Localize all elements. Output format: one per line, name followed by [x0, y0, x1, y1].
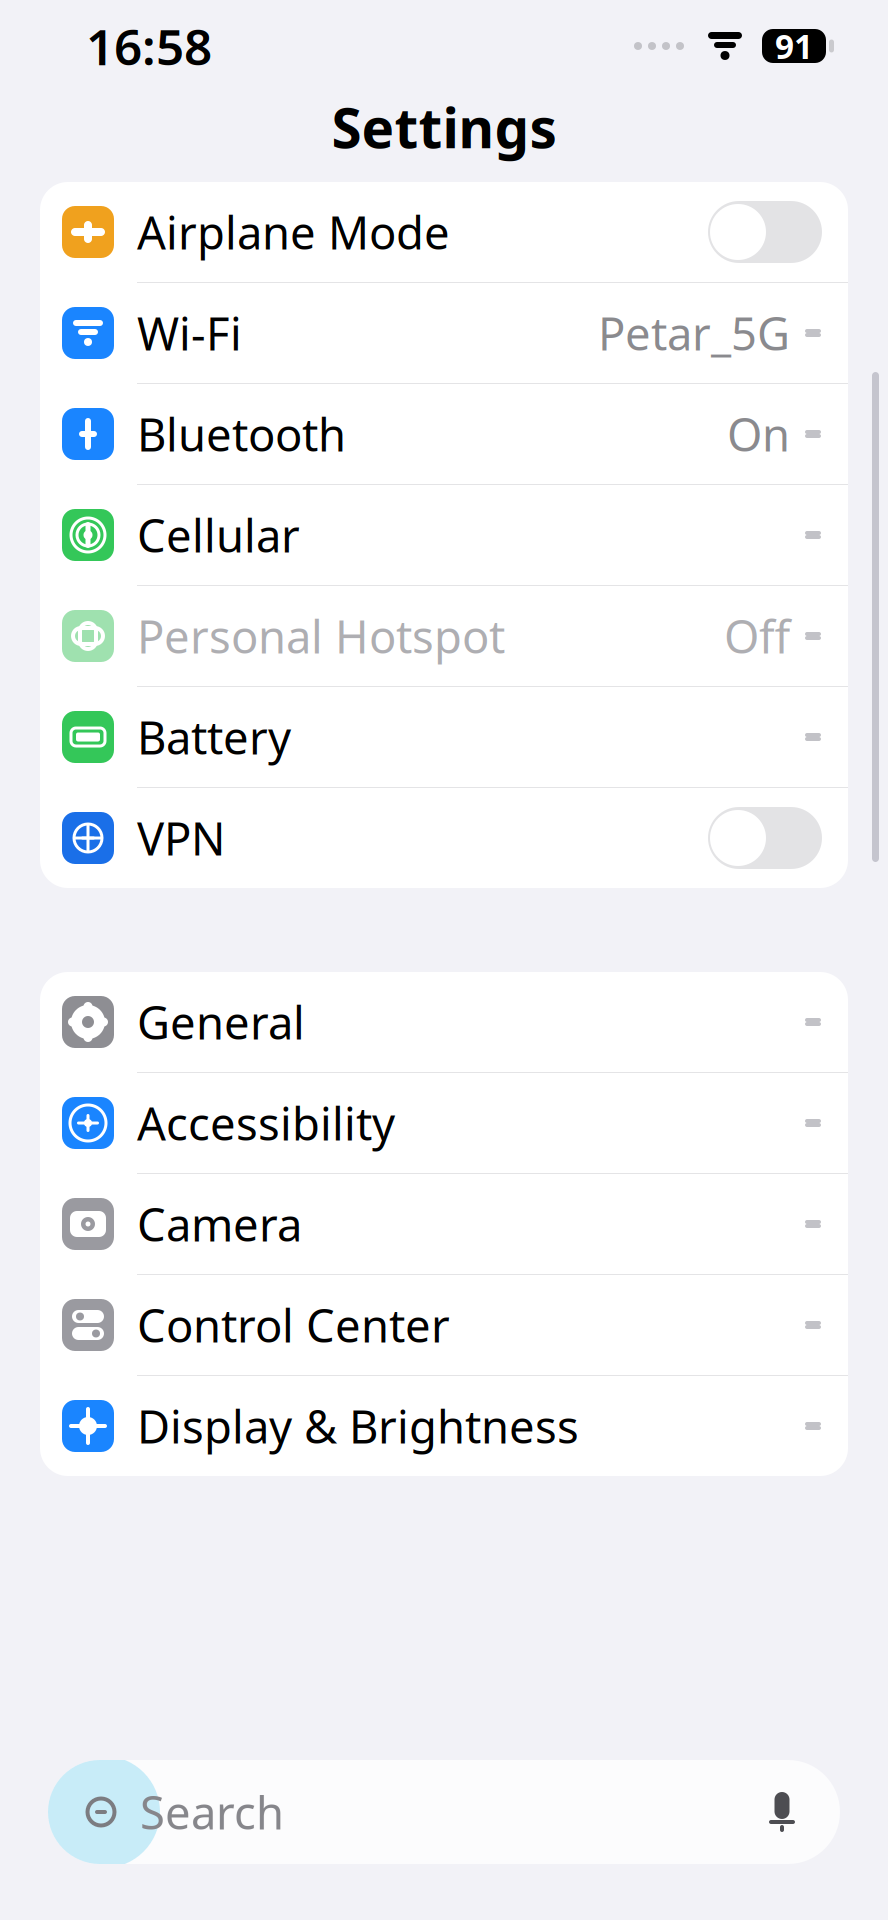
staticText: Camera [137, 1194, 302, 1254]
staticText: Off [724, 606, 790, 666]
button[interactable]: Personal Hotspot [40, 586, 848, 686]
button[interactable]: Display & Brightness [40, 1376, 848, 1476]
staticText: Search [140, 1782, 284, 1842]
staticText: Control Center [137, 1295, 450, 1355]
staticText: Settings [331, 91, 556, 163]
button[interactable]: General [40, 972, 848, 1072]
staticText: Accessibility [137, 1093, 395, 1153]
staticText: General [137, 992, 305, 1052]
staticText: Petar_5G [598, 303, 790, 363]
button[interactable]: Airplane Mode [40, 182, 848, 282]
staticText: On [727, 404, 790, 464]
staticText: Battery [137, 707, 291, 767]
staticText: Bluetooth [137, 404, 346, 464]
button[interactable]: Battery [40, 687, 848, 787]
button[interactable]: Camera [40, 1174, 848, 1274]
button[interactable]: Accessibility [40, 1073, 848, 1173]
button[interactable]: Bluetooth [40, 384, 848, 484]
button[interactable]: Control Center [40, 1275, 848, 1375]
staticText: Display & Brightness [137, 1396, 579, 1456]
staticText: 16:58 [86, 13, 212, 79]
staticText: Cellular [137, 505, 300, 565]
button[interactable]: Cellular [40, 485, 848, 585]
staticText: VPN [137, 808, 225, 868]
staticText: Personal Hotspot [137, 606, 505, 666]
staticText: Airplane Mode [137, 202, 450, 262]
staticText: Wi-Fi [137, 303, 242, 363]
button[interactable]: Search [0, 1760, 888, 1864]
staticText: 91 [775, 24, 813, 68]
button[interactable]: VPN [40, 788, 848, 888]
button[interactable]: Wi-Fi [40, 283, 848, 383]
